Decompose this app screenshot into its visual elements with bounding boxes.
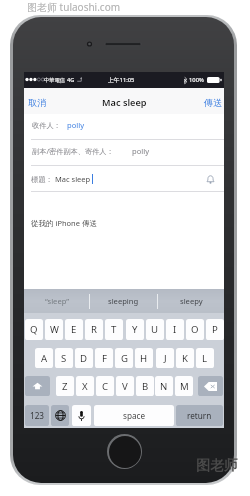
- button[interactable]: V: [116, 376, 134, 396]
- button[interactable]: Z: [56, 376, 74, 396]
- button[interactable]: L: [196, 348, 214, 368]
- staticText: 123: [30, 410, 45, 421]
- button[interactable]: 123: [25, 405, 49, 426]
- button[interactable]: sleepy: [158, 289, 224, 313]
- staticText: space: [123, 410, 146, 421]
- button[interactable]: Backspace: [198, 376, 223, 396]
- staticText: I: [173, 323, 177, 336]
- button[interactable]: J: [156, 348, 174, 368]
- button[interactable]: B: [136, 376, 154, 396]
- staticText: sleepy: [180, 296, 203, 306]
- staticText: 图老师: [196, 457, 238, 475]
- button[interactable]: P: [206, 319, 224, 340]
- staticText: 中華電信: [44, 77, 65, 84]
- staticText: polly: [132, 146, 150, 156]
- staticText: D: [80, 352, 88, 365]
- staticText: Z: [62, 380, 68, 393]
- button[interactable]: sleeping: [90, 289, 157, 313]
- button[interactable]: space: [94, 405, 174, 426]
- staticText: Mac sleep: [55, 174, 91, 184]
- button[interactable]: 收件人：: [24, 114, 224, 140]
- staticText: “sleep”: [45, 296, 69, 306]
- button[interactable]: G: [115, 348, 133, 368]
- staticText: V: [122, 380, 128, 393]
- staticText: X: [82, 380, 88, 393]
- button[interactable]: F: [95, 348, 113, 368]
- button[interactable]: D: [75, 348, 93, 368]
- button[interactable]: 副本/密件副本、寄件人：: [24, 140, 224, 166]
- button[interactable]: 標題：: [24, 166, 224, 192]
- button[interactable]: 傳送: [202, 88, 224, 114]
- button[interactable]: N: [155, 376, 173, 396]
- staticText: F: [102, 352, 107, 365]
- staticText: 100%: [189, 76, 204, 84]
- staticText: M: [180, 380, 189, 393]
- staticText: R: [91, 323, 97, 336]
- staticText: P: [212, 323, 218, 336]
- staticText: W: [50, 323, 59, 336]
- staticText: 上午11:05: [108, 76, 135, 84]
- staticText: E: [71, 323, 77, 336]
- button[interactable]: K: [176, 348, 194, 368]
- staticText: N: [160, 380, 168, 393]
- button[interactable]: R: [85, 319, 103, 340]
- button[interactable]: 取消: [26, 88, 48, 114]
- staticText: 標題：: [31, 175, 53, 184]
- staticText: 傳送: [204, 97, 222, 108]
- button[interactable]: A: [35, 348, 53, 368]
- staticText: 取消: [28, 97, 46, 108]
- button[interactable]: O: [186, 319, 204, 340]
- staticText: J: [164, 352, 167, 365]
- staticText: return: [187, 410, 212, 421]
- button[interactable]: T: [105, 319, 123, 340]
- button[interactable]: X: [76, 376, 94, 396]
- button[interactable]: Change keyboard: [51, 405, 69, 426]
- staticText: 4G: [67, 76, 75, 84]
- button[interactable]: W: [45, 319, 63, 340]
- button[interactable]: return: [176, 405, 223, 426]
- button[interactable]: Y: [126, 319, 144, 340]
- staticText: polly: [67, 120, 85, 130]
- staticText: 從我的 iPhone 傳送: [31, 218, 97, 228]
- staticText: Q: [30, 323, 38, 336]
- staticText: 副本/密件副本、寄件人：: [32, 146, 114, 156]
- staticText: 收件人：: [32, 121, 61, 130]
- staticText: A: [41, 352, 48, 365]
- staticText: 图老师 tulaoshi.com: [27, 0, 121, 14]
- staticText: K: [182, 352, 188, 365]
- button[interactable]: Dictate: [72, 405, 91, 426]
- staticText: L: [202, 352, 208, 365]
- button[interactable]: Q: [25, 319, 43, 340]
- button[interactable]: Notification: [205, 174, 216, 185]
- staticText: H: [140, 352, 148, 365]
- staticText: O: [191, 323, 199, 336]
- staticText: C: [102, 380, 109, 393]
- button[interactable]: H: [135, 348, 153, 368]
- button[interactable]: E: [65, 319, 83, 340]
- staticText: S: [61, 352, 67, 365]
- staticText: Mac sleep: [102, 96, 147, 109]
- button[interactable]: Shift: [25, 376, 50, 396]
- staticText: sleeping: [108, 296, 139, 306]
- button[interactable]: M: [175, 376, 193, 396]
- staticText: G: [121, 352, 128, 365]
- staticText: U: [151, 323, 159, 336]
- button[interactable]: C: [96, 376, 114, 396]
- staticText: B: [142, 380, 149, 393]
- button[interactable]: U: [146, 319, 164, 340]
- staticText: Y: [132, 323, 138, 336]
- button[interactable]: I: [166, 319, 184, 340]
- button[interactable]: “sleep”: [24, 289, 89, 313]
- button[interactable]: S: [55, 348, 73, 368]
- staticText: T: [111, 323, 117, 336]
